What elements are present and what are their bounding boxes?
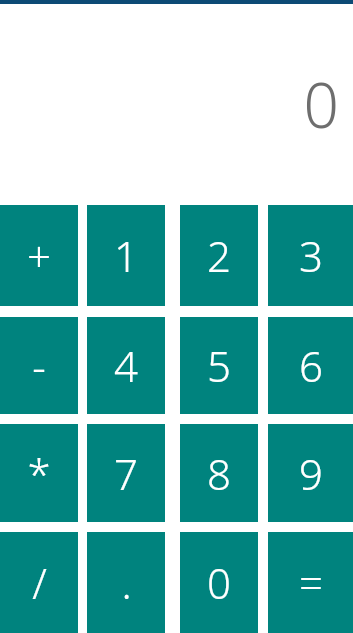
staticText: 3 [299,227,323,284]
staticText: 5 [207,337,231,394]
button[interactable]: 1 [87,205,165,306]
staticText: . [121,554,132,611]
button[interactable]: * [0,424,78,522]
button[interactable]: / [0,532,78,633]
staticText: 9 [299,445,323,502]
button[interactable]: 4 [87,317,165,414]
staticText: 1 [114,227,138,284]
staticText: - [32,337,46,394]
button[interactable]: 5 [180,317,258,414]
staticText: 6 [299,337,323,394]
staticText: / [32,554,47,611]
staticText: 7 [114,445,138,502]
button[interactable]: 9 [268,424,353,522]
button[interactable]: 3 [268,205,353,306]
staticText: 0 [303,62,339,146]
button[interactable]: 0 [180,532,258,633]
button[interactable]: = [268,532,353,633]
button[interactable]: + [0,205,78,306]
staticText: * [27,445,51,502]
button[interactable]: 8 [180,424,258,522]
button[interactable]: 7 [87,424,165,522]
staticText: + [27,227,51,284]
button[interactable]: 2 [180,205,258,306]
staticText: 2 [207,227,231,284]
staticText: = [299,554,323,611]
staticText: 0 [207,554,231,611]
staticText: 8 [207,445,231,502]
staticText: 4 [114,337,138,394]
button[interactable]: 6 [268,317,353,414]
button[interactable]: - [0,317,78,414]
button[interactable]: . [87,532,165,633]
